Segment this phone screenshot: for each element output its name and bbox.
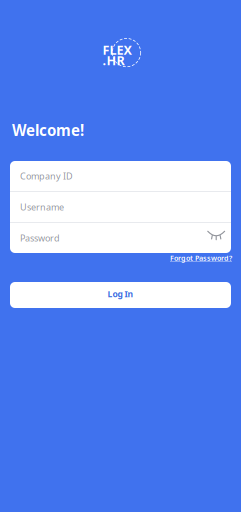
button[interactable]: Log In bbox=[10, 282, 231, 308]
staticText: Welcome! bbox=[12, 120, 84, 140]
button[interactable]: Username bbox=[10, 192, 225, 222]
staticText: Log In bbox=[107, 288, 133, 300]
button[interactable]: Company ID bbox=[10, 161, 225, 191]
button[interactable]: Forgot Password? bbox=[160, 252, 232, 264]
staticText: Forgot Password? bbox=[170, 253, 232, 263]
staticText: .HR bbox=[103, 52, 125, 69]
staticText: Username bbox=[20, 201, 64, 213]
staticText: Company ID bbox=[20, 170, 73, 182]
staticText: Password bbox=[20, 232, 60, 244]
button[interactable]: Show password bbox=[204, 223, 228, 253]
staticText: FLEX bbox=[103, 41, 132, 58]
button[interactable]: Password bbox=[10, 223, 204, 253]
